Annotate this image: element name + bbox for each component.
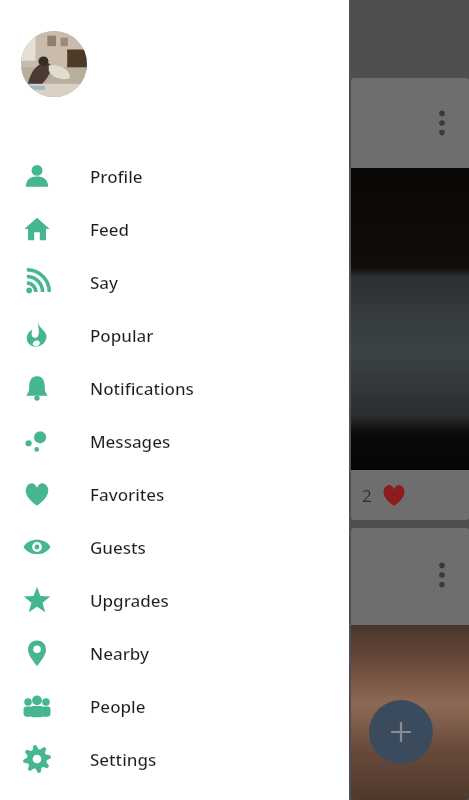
staticText: Upgrades: [90, 589, 169, 612]
staticText: Messages: [90, 430, 171, 453]
button[interactable]: Nearby: [0, 626, 349, 679]
staticText: Feed: [90, 218, 130, 241]
button[interactable]: Notifications: [0, 361, 349, 414]
staticText: Favorites: [90, 483, 165, 506]
staticText: Notifications: [90, 377, 194, 400]
staticText: Settings: [90, 748, 157, 771]
button[interactable]: Upgrades: [0, 573, 349, 626]
button[interactable]: Settings: [0, 732, 349, 785]
button[interactable]: 2: [351, 470, 469, 520]
staticText: People: [90, 695, 146, 718]
button[interactable]: More options: [351, 528, 469, 800]
staticText: Nearby: [90, 642, 150, 665]
button[interactable]: Popular: [0, 308, 349, 361]
button[interactable]: More options: [351, 78, 469, 520]
staticText: 2: [362, 484, 372, 507]
button[interactable]: Messages: [0, 414, 349, 467]
button[interactable]: People: [0, 679, 349, 732]
staticText: Popular: [90, 324, 154, 347]
button[interactable]: More options: [435, 110, 449, 136]
button[interactable]: Profile photo: [21, 31, 87, 97]
staticText: Say: [90, 271, 119, 294]
button[interactable]: Profile: [0, 149, 349, 202]
button[interactable]: Add: [369, 700, 433, 764]
button[interactable]: Feed: [0, 202, 349, 255]
button[interactable]: Guests: [0, 520, 349, 573]
staticText: Profile: [90, 165, 143, 188]
button[interactable]: Favorites: [0, 467, 349, 520]
button[interactable]: More options: [435, 562, 449, 588]
button[interactable]: Say: [0, 255, 349, 308]
staticText: Guests: [90, 536, 146, 559]
